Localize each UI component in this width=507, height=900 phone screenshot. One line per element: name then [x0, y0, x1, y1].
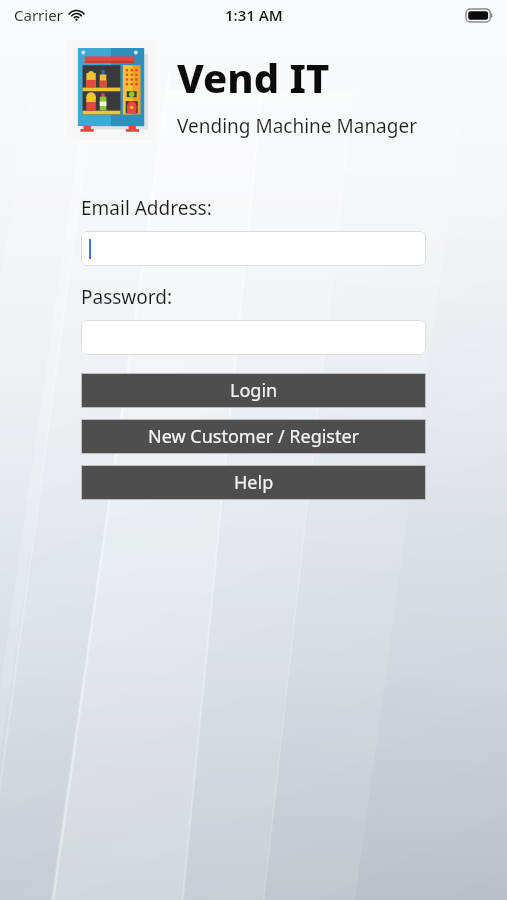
- button[interactable]: Help: [81, 465, 426, 500]
- staticText: Help: [234, 470, 274, 495]
- other: Vend IT logo: [66, 40, 156, 140]
- staticText: New Customer / Register: [148, 424, 360, 449]
- staticText: Email Address:: [81, 195, 212, 221]
- staticText: Vend IT: [177, 50, 330, 104]
- staticText: Login: [230, 378, 278, 403]
- staticText: 1:31 AM: [225, 5, 283, 25]
- staticText: Carrier: [14, 5, 63, 25]
- staticText: Vending Machine Manager: [177, 113, 418, 139]
- staticText: Password:: [81, 284, 173, 310]
- button[interactable]: New Customer / Register: [81, 419, 426, 454]
- button[interactable]: Email Address input: [81, 231, 426, 266]
- button[interactable]: Password input: [81, 320, 426, 355]
- button[interactable]: Login: [81, 373, 426, 408]
